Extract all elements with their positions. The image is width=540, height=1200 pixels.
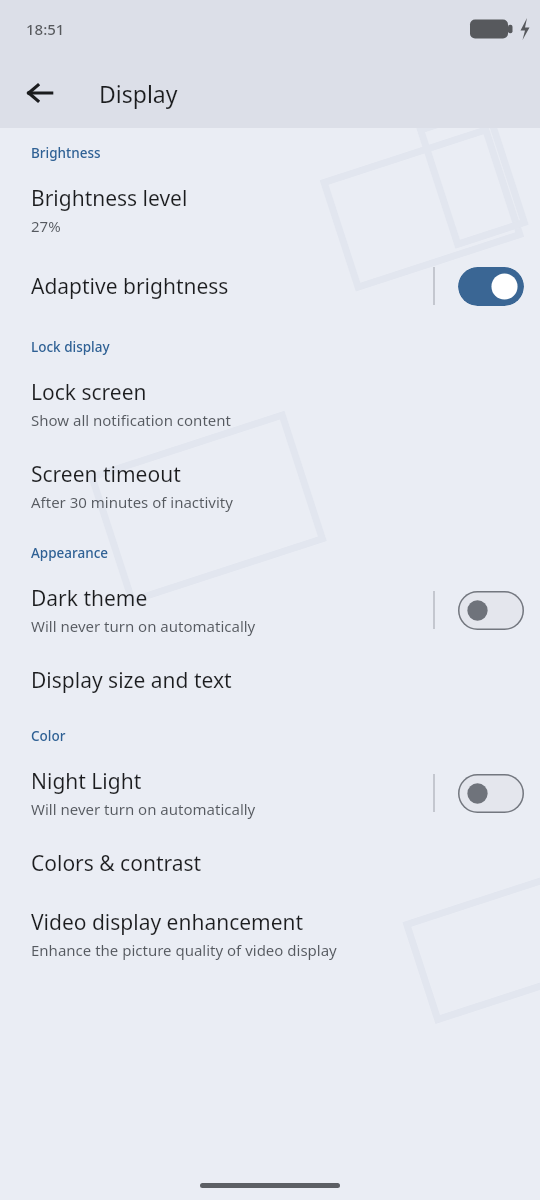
staticText: Will never turn on automatically: [31, 616, 256, 636]
staticText: Dark theme: [31, 584, 148, 613]
staticText: Display: [99, 78, 178, 109]
staticText: 18:51: [26, 19, 65, 39]
button[interactable]: Toggle on: [458, 267, 524, 306]
button[interactable]: Toggle off: [458, 591, 524, 630]
staticText: Appearance: [31, 544, 109, 562]
staticText: Lock display: [31, 338, 110, 356]
button[interactable]: Screen timeout: [0, 460, 540, 512]
staticText: Adaptive brightness: [31, 272, 229, 301]
staticText: Brightness level: [31, 184, 188, 213]
button[interactable]: Toggle off: [458, 774, 524, 813]
button[interactable]: Colors & contrast: [0, 849, 540, 878]
staticText: Video display enhancement: [31, 908, 304, 937]
button[interactable]: Brightness level: [0, 184, 540, 236]
button[interactable]: Lock screen: [0, 378, 540, 430]
button[interactable]: Display size and text: [0, 666, 540, 695]
staticText: Show all notification content: [31, 410, 231, 430]
staticText: Screen timeout: [31, 460, 181, 489]
button[interactable]: Adaptive brightness: [0, 266, 540, 306]
button[interactable]: Dark theme: [0, 584, 540, 636]
staticText: Display size and text: [31, 666, 232, 695]
staticText: Will never turn on automatically: [31, 799, 256, 819]
staticText: Color: [31, 727, 66, 745]
staticText: Colors & contrast: [31, 849, 202, 878]
staticText: 27%: [31, 216, 61, 236]
button[interactable]: Back: [14, 67, 66, 119]
staticText: Enhance the picture quality of video dis…: [31, 940, 337, 960]
staticText: Lock screen: [31, 378, 147, 407]
button[interactable]: Night Light: [0, 767, 540, 819]
staticText: After 30 minutes of inactivity: [31, 492, 233, 512]
staticText: Night Light: [31, 767, 142, 796]
staticText: Brightness: [31, 144, 101, 162]
button[interactable]: Video display enhancement: [0, 908, 540, 960]
